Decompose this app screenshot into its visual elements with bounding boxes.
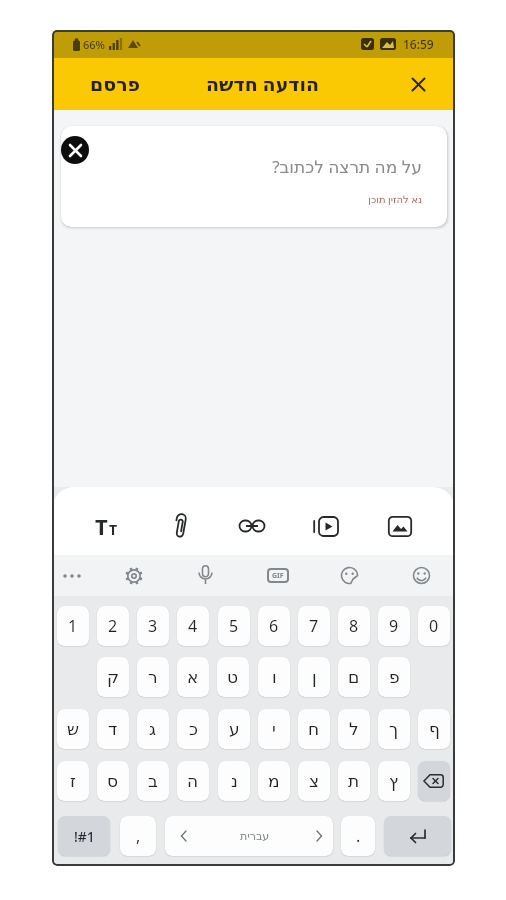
- button[interactable]: 9: [378, 606, 410, 646]
- button[interactable]: [382, 492, 418, 555]
- button[interactable]: [116, 555, 152, 596]
- staticText: נא להזין תוכן: [368, 192, 422, 206]
- button[interactable]: ט: [217, 657, 249, 697]
- button[interactable]: פרסם: [90, 58, 170, 110]
- staticText: 4: [188, 615, 198, 637]
- button[interactable]: ך: [378, 709, 410, 749]
- staticText: ק: [107, 667, 120, 687]
- button[interactable]: 7: [298, 606, 330, 646]
- staticText: GIF: [272, 571, 284, 581]
- button[interactable]: ל: [338, 709, 370, 749]
- button[interactable]: GIF: [260, 555, 296, 596]
- staticText: ס: [107, 771, 119, 791]
- staticText: ט: [227, 667, 239, 687]
- staticText: T: [109, 520, 118, 539]
- staticText: י: [272, 719, 276, 739]
- staticText: ת: [348, 771, 360, 791]
- staticText: פרסם: [90, 73, 141, 95]
- button[interactable]: 0: [418, 606, 450, 646]
- button[interactable]: 2: [97, 606, 129, 646]
- button[interactable]: [396, 58, 440, 110]
- button[interactable]: [61, 136, 89, 164]
- button[interactable]: ף: [418, 709, 450, 749]
- staticText: ח: [308, 719, 320, 739]
- button[interactable]: [384, 816, 451, 856]
- staticText: ר: [148, 667, 158, 687]
- button[interactable]: !#1: [58, 816, 110, 856]
- button[interactable]: נ: [218, 761, 250, 801]
- staticText: הודעה חדשה: [206, 71, 320, 97]
- button[interactable]: [308, 492, 344, 555]
- staticText: א: [187, 667, 199, 687]
- staticText: 5: [229, 615, 239, 637]
- staticText: פ: [389, 667, 400, 687]
- staticText: נ: [231, 771, 238, 791]
- staticText: ז: [70, 771, 76, 791]
- button[interactable]: ן: [298, 657, 330, 697]
- staticText: 16:59: [403, 36, 434, 52]
- button[interactable]: [187, 555, 223, 596]
- staticText: .: [356, 825, 361, 847]
- button[interactable]: ס: [97, 761, 129, 801]
- button[interactable]: ע: [218, 709, 250, 749]
- button[interactable]: [331, 555, 367, 596]
- staticText: 6: [269, 615, 279, 637]
- staticText: צ: [309, 771, 320, 791]
- button[interactable]: 1: [57, 606, 89, 646]
- button[interactable]: על מה תרצה לכתוב?: [61, 126, 447, 227]
- button[interactable]: .: [341, 816, 375, 856]
- button[interactable]: ת: [338, 761, 370, 801]
- button[interactable]: ,: [120, 816, 156, 856]
- staticText: 8: [349, 615, 359, 637]
- button[interactable]: 3: [137, 606, 169, 646]
- button[interactable]: ר: [137, 657, 169, 697]
- staticText: ץ: [389, 771, 399, 791]
- staticText: 1: [68, 615, 78, 637]
- button[interactable]: פ: [378, 657, 410, 697]
- staticText: 0: [429, 615, 439, 637]
- button[interactable]: [403, 555, 439, 596]
- staticText: 2: [108, 615, 118, 637]
- staticText: ג: [149, 719, 157, 739]
- staticText: ף: [429, 719, 440, 739]
- button[interactable]: [162, 492, 198, 555]
- button[interactable]: [418, 761, 450, 801]
- staticText: ך: [389, 719, 399, 739]
- button[interactable]: ב: [137, 761, 169, 801]
- button[interactable]: ץ: [378, 761, 410, 801]
- button[interactable]: 4: [177, 606, 209, 646]
- button[interactable]: ז: [57, 761, 89, 801]
- button[interactable]: ד: [97, 709, 129, 749]
- staticText: כ: [189, 719, 198, 739]
- staticText: 9: [389, 615, 399, 637]
- button[interactable]: צ: [298, 761, 330, 801]
- button[interactable]: עברית: [165, 816, 333, 856]
- button[interactable]: ק: [97, 657, 129, 697]
- button[interactable]: ש: [57, 709, 89, 749]
- button[interactable]: ם: [338, 657, 370, 697]
- button[interactable]: כ: [177, 709, 209, 749]
- staticText: ,: [136, 825, 141, 847]
- button[interactable]: ה: [177, 761, 209, 801]
- button[interactable]: מ: [258, 761, 290, 801]
- button[interactable]: ג: [137, 709, 169, 749]
- button[interactable]: 6: [258, 606, 290, 646]
- button[interactable]: [54, 555, 90, 596]
- button[interactable]: 8: [338, 606, 370, 646]
- staticText: ש: [67, 719, 80, 739]
- staticText: ה: [187, 771, 199, 791]
- staticText: ד: [108, 719, 118, 739]
- button[interactable]: T: [88, 492, 124, 555]
- staticText: 7: [309, 615, 319, 637]
- button[interactable]: י: [258, 709, 290, 749]
- staticText: !#1: [74, 827, 95, 846]
- button[interactable]: 5: [218, 606, 250, 646]
- staticText: ן: [312, 667, 317, 687]
- button[interactable]: ו: [258, 657, 290, 697]
- button[interactable]: א: [177, 657, 209, 697]
- staticText: 66%: [83, 37, 105, 52]
- staticText: ו: [272, 667, 277, 687]
- button[interactable]: ח: [298, 709, 330, 749]
- staticText: עברית: [240, 830, 270, 843]
- button[interactable]: [234, 492, 270, 555]
